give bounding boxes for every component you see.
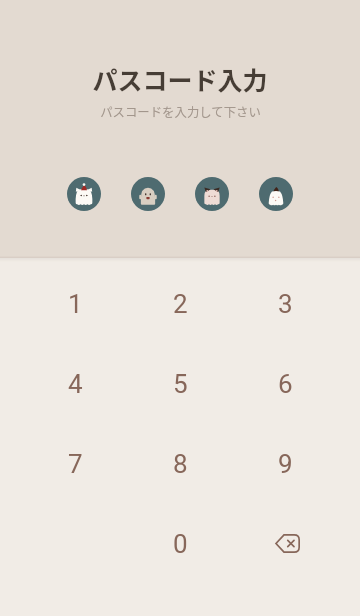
button[interactable]: 7 [23,424,128,504]
staticText: パスコードを入力して下さい [100,103,261,121]
staticText: 0 [173,529,188,559]
staticText: 1 [68,289,83,319]
staticText: 6 [278,369,293,399]
staticText: 4 [68,369,83,399]
button[interactable]: 9 [233,424,338,504]
staticText: 2 [173,289,188,319]
button[interactable]: 2 [128,264,233,344]
staticText: 8 [173,449,188,479]
button[interactable]: 1 [23,264,128,344]
staticText: パスコード入力 [92,61,268,97]
button[interactable]: 4 [23,344,128,424]
staticText: 9 [278,449,293,479]
staticText: 5 [173,369,188,399]
button[interactable]: 0 [128,504,233,584]
button[interactable]: 5 [128,344,233,424]
staticText: 3 [278,289,293,319]
button[interactable]: 8 [128,424,233,504]
other: Backspace [266,524,306,564]
button[interactable]: 3 [233,264,338,344]
staticText: 7 [68,449,83,479]
button[interactable]: Backspace [233,504,338,584]
button[interactable]: 6 [233,344,338,424]
